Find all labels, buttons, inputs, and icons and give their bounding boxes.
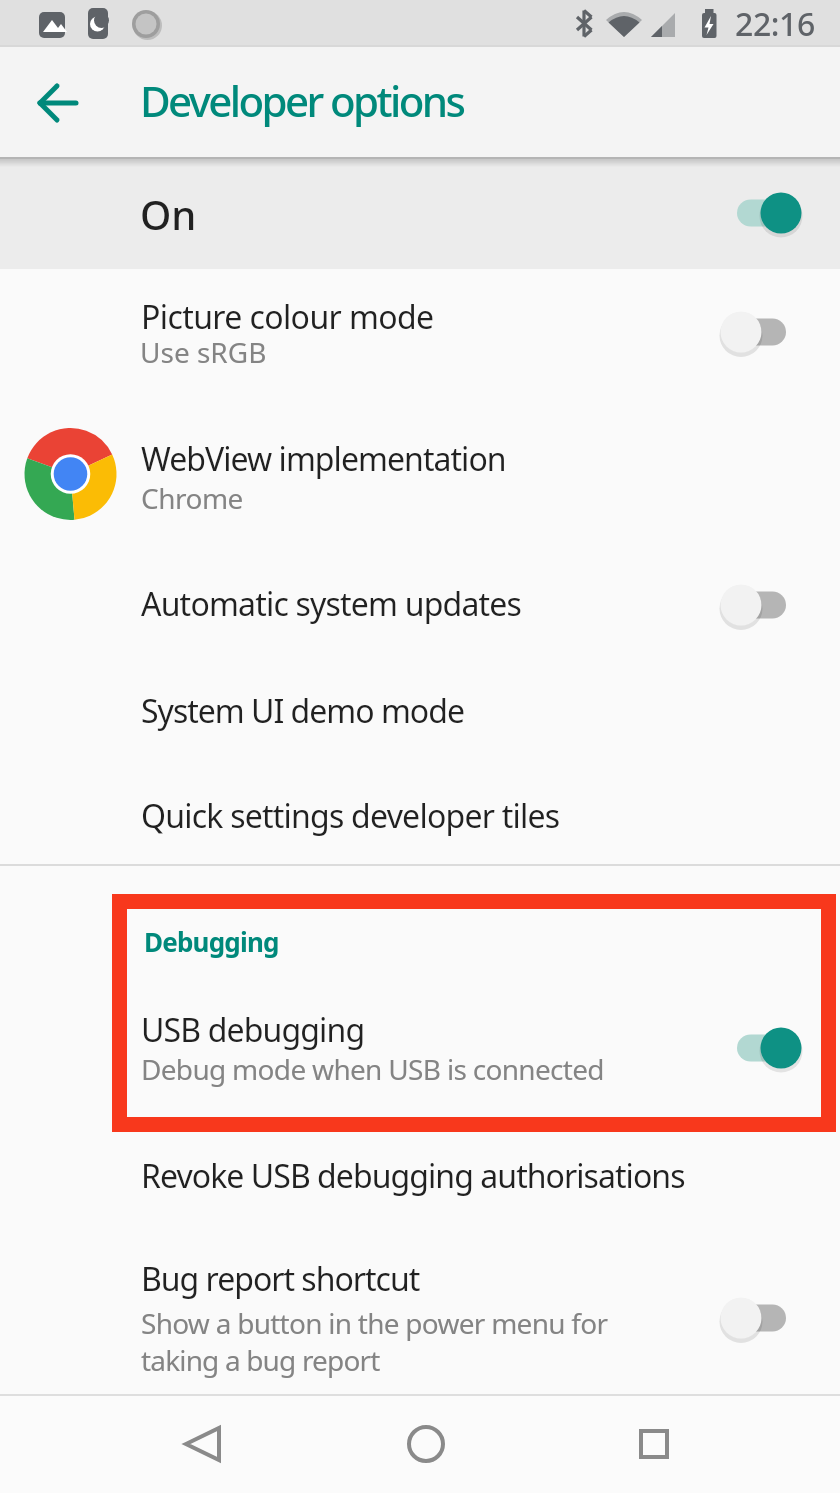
staticText: Picture colour mode bbox=[141, 295, 434, 339]
button[interactable] bbox=[0, 157, 840, 269]
staticText: Use sRGB bbox=[140, 333, 267, 371]
staticText: Quick settings developer tiles bbox=[141, 794, 560, 838]
button[interactable] bbox=[613, 1404, 693, 1484]
button[interactable] bbox=[0, 985, 840, 1110]
staticText: System UI demo mode bbox=[141, 689, 464, 733]
button[interactable] bbox=[0, 665, 840, 772]
button[interactable] bbox=[0, 425, 840, 545]
button[interactable] bbox=[0, 269, 840, 425]
staticText: Debug mode when USB is connected bbox=[141, 1050, 604, 1088]
button[interactable] bbox=[0, 1135, 840, 1240]
staticText: WebView implementation bbox=[141, 437, 506, 481]
staticText: Chrome bbox=[141, 479, 243, 517]
button[interactable] bbox=[20, 80, 68, 128]
button[interactable] bbox=[0, 545, 840, 665]
staticText: USB debugging bbox=[141, 1008, 365, 1052]
staticText: On bbox=[140, 187, 197, 241]
button[interactable] bbox=[146, 1404, 226, 1484]
button[interactable] bbox=[0, 772, 840, 864]
staticText: Show a button in the power menu for bbox=[141, 1304, 608, 1342]
staticText: taking a bug report bbox=[141, 1341, 380, 1379]
button[interactable] bbox=[386, 1404, 466, 1484]
staticText: Bug report shortcut bbox=[141, 1257, 420, 1301]
staticText: Debugging bbox=[144, 924, 279, 959]
staticText: Revoke USB debugging authorisations bbox=[141, 1154, 685, 1198]
staticText: 22:16 bbox=[735, 2, 815, 46]
staticText: Automatic system updates bbox=[141, 582, 522, 626]
button[interactable] bbox=[0, 1240, 840, 1390]
staticText: Developer options bbox=[140, 72, 464, 129]
